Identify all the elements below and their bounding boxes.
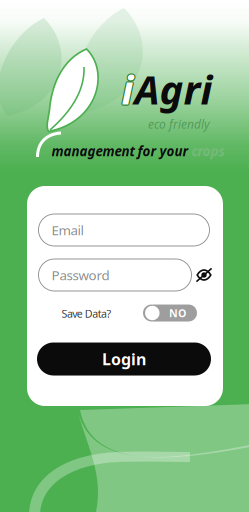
staticText: i <box>121 61 133 114</box>
staticText: i <box>121 63 133 116</box>
button[interactable]: Save Data toggle <box>143 304 197 321</box>
staticText: i <box>122 62 134 115</box>
staticText: i <box>121 62 133 115</box>
staticText: i <box>121 62 133 115</box>
staticText: i <box>122 63 134 116</box>
button[interactable]: Login <box>37 342 211 375</box>
staticText: i <box>121 63 133 116</box>
button[interactable]: Show password <box>196 267 212 283</box>
staticText: crops <box>191 142 224 160</box>
staticText: Agri <box>134 62 212 115</box>
staticText: Password <box>51 266 109 284</box>
staticText: Save Data? <box>61 306 112 321</box>
staticText: Login <box>102 348 146 370</box>
staticText: Email <box>51 221 83 239</box>
staticText: management for your <box>51 142 191 160</box>
staticText: i <box>120 62 132 115</box>
staticText: i <box>122 62 134 115</box>
staticText: eco friendly <box>148 116 210 132</box>
staticText: NO <box>169 306 186 320</box>
